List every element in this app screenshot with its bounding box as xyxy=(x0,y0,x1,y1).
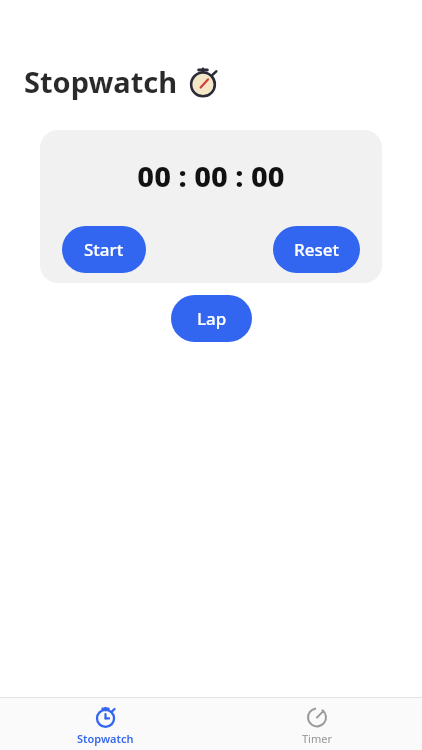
button[interactable]: Lap xyxy=(171,295,252,342)
staticText: Stopwatch xyxy=(24,62,178,101)
button[interactable]: Start xyxy=(62,226,146,273)
other: Stopwatch xyxy=(94,704,118,728)
staticText: 00 : 00 : 00 xyxy=(137,156,285,195)
staticText: Timer xyxy=(302,731,332,746)
staticText: Lap xyxy=(197,307,227,330)
staticText: Start xyxy=(84,238,124,261)
button[interactable]: Reset xyxy=(273,226,360,273)
staticText: Stopwatch xyxy=(77,731,134,746)
button[interactable]: Timer xyxy=(211,697,422,750)
staticText: Reset xyxy=(294,238,340,261)
button[interactable]: Stopwatch xyxy=(0,697,211,750)
other: Timer xyxy=(305,704,329,728)
